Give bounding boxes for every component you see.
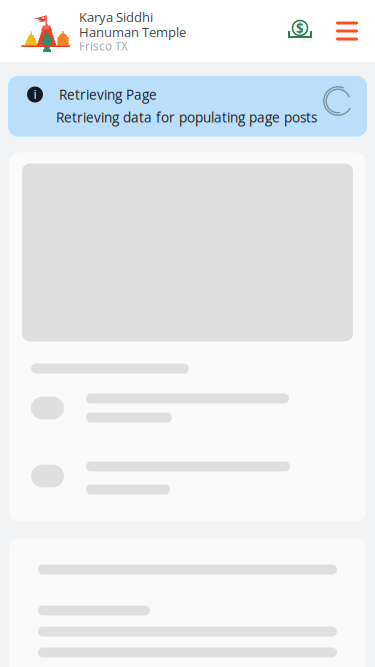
staticText: Hanuman Temple [79, 23, 186, 41]
button[interactable]: Donate [287, 18, 313, 44]
staticText: Retrieving data for populating page post… [56, 108, 317, 126]
button[interactable]: Menu [334, 18, 360, 44]
staticText: Frisco TX [79, 38, 128, 54]
staticText: Karya Siddhi [79, 8, 153, 26]
staticText: Retrieving Page [59, 85, 157, 104]
staticText: i [33, 85, 36, 103]
staticText: $ [296, 19, 304, 37]
